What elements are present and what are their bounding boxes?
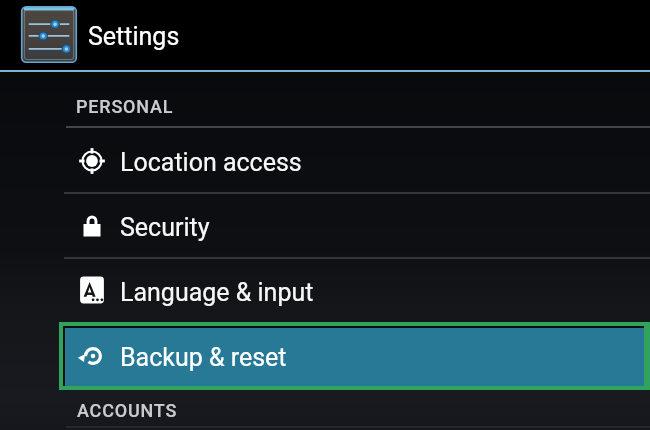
staticText: Security — [120, 213, 210, 242]
other: Backup and reset — [79, 342, 107, 370]
other: Security — [78, 212, 106, 240]
staticText: ACCOUNTS — [77, 400, 178, 421]
button[interactable]: Security — [0, 193, 650, 258]
staticText: Language & input — [120, 278, 314, 307]
other: Language and input — [78, 276, 106, 304]
staticText: Location access — [120, 148, 302, 177]
button[interactable]: Language and input — [0, 258, 650, 322]
other: Location access — [78, 147, 106, 175]
other: Settings — [20, 5, 78, 64]
button[interactable]: Settings — [0, 0, 650, 70]
button[interactable]: Location access — [0, 128, 650, 193]
button[interactable]: Backup and reset — [65, 328, 644, 386]
staticText: PERSONAL — [76, 96, 174, 117]
staticText: Settings — [88, 22, 180, 51]
staticText: Backup & reset — [120, 343, 287, 372]
